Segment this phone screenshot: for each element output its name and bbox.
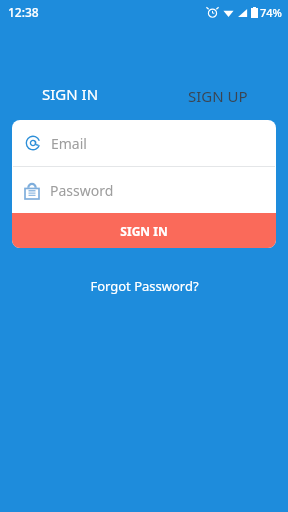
button[interactable]: Forgot Password? [80, 274, 209, 298]
staticText: 12:38 [8, 4, 39, 20]
staticText: SIGN UP [188, 86, 248, 104]
staticText: Email [51, 134, 87, 153]
button[interactable]: Email [12, 120, 276, 166]
button[interactable]: SIGN UP [174, 82, 262, 108]
button[interactable]: SIGN IN [28, 82, 113, 108]
staticText: Forgot Password? [90, 277, 199, 295]
button[interactable]: SIGN IN [12, 213, 276, 248]
staticText: SIGN IN [42, 84, 99, 104]
button[interactable]: Password [12, 167, 276, 213]
staticText: SIGN IN [120, 223, 168, 239]
staticText: Password [50, 181, 114, 200]
staticText: 74% [260, 5, 282, 20]
